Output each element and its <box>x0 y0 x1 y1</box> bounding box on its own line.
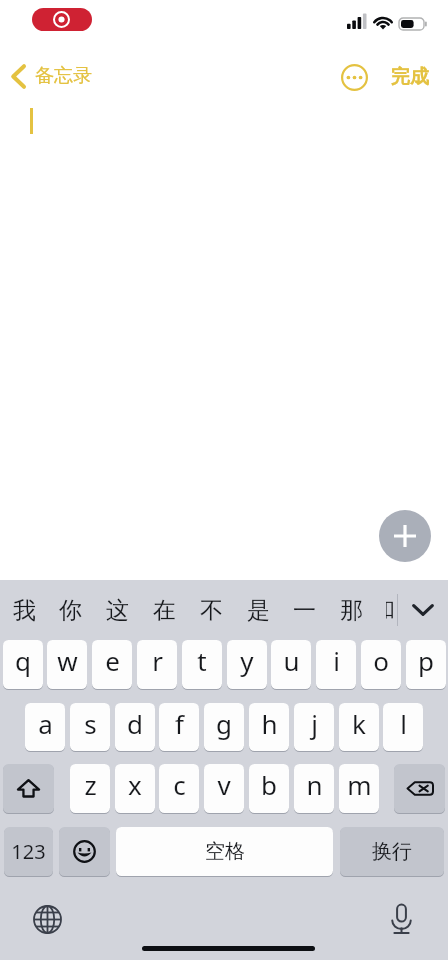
staticText: o <box>373 643 389 678</box>
button[interactable]: Backspace <box>394 764 445 813</box>
button[interactable]: Recording <box>32 8 92 31</box>
staticText: l <box>400 706 407 741</box>
staticText: t <box>197 643 207 678</box>
button[interactable]: e <box>92 640 132 689</box>
staticText: 你 <box>59 596 82 625</box>
button[interactable]: w <box>47 640 87 689</box>
staticText: g <box>216 706 232 741</box>
staticText: 那 <box>340 596 363 625</box>
button[interactable]: f <box>159 703 199 751</box>
button[interactable]: 我 <box>1 587 47 633</box>
button[interactable]: m <box>339 764 379 813</box>
button[interactable]: h <box>249 703 289 751</box>
staticText: s <box>84 706 97 741</box>
button[interactable]: Add attachment <box>379 510 431 562</box>
button[interactable]: o <box>361 640 401 689</box>
staticText: u <box>283 643 300 678</box>
button[interactable]: 完成 <box>386 60 434 94</box>
staticText: y <box>240 643 254 678</box>
button[interactable]: 在 <box>141 587 187 633</box>
button[interactable]: 你 <box>47 587 93 633</box>
staticText: 换行 <box>372 839 412 864</box>
button[interactable]: c <box>159 764 199 813</box>
button[interactable]: v <box>204 764 244 813</box>
staticText: e <box>105 643 120 678</box>
button[interactable]: 是 <box>235 587 281 633</box>
staticText: n <box>306 767 323 802</box>
staticText: m <box>347 767 372 802</box>
button[interactable]: x <box>115 764 155 813</box>
staticText: w <box>57 643 78 678</box>
button[interactable]: r <box>137 640 177 689</box>
button[interactable]: s <box>70 703 110 751</box>
staticText: p <box>418 643 434 678</box>
button[interactable]: Shift <box>3 764 54 813</box>
staticText: 备忘录 <box>35 64 92 88</box>
button[interactable]: 备忘录 <box>4 56 100 96</box>
staticText: 完成 <box>391 65 429 89</box>
button[interactable]: 这 <box>94 587 140 633</box>
button[interactable]: k <box>339 703 379 751</box>
button[interactable]: More options <box>341 64 368 91</box>
button[interactable]: p <box>406 640 446 689</box>
staticText: r <box>152 643 163 678</box>
button[interactable]: 空格 <box>116 827 333 876</box>
staticText: k <box>352 706 366 741</box>
button[interactable]: d <box>115 703 155 751</box>
button[interactable]: a <box>25 703 65 751</box>
staticText: 是 <box>247 596 270 625</box>
button[interactable]: 换行 <box>340 827 444 876</box>
button[interactable]: n <box>294 764 334 813</box>
button[interactable]: y <box>227 640 267 689</box>
staticText: 不 <box>200 596 223 625</box>
button[interactable]: 一 <box>281 587 327 633</box>
button[interactable]: 123 <box>4 827 53 876</box>
button[interactable]: q <box>3 640 43 689</box>
staticText: c <box>173 767 186 802</box>
button[interactable]: g <box>204 703 244 751</box>
button[interactable]: b <box>249 764 289 813</box>
staticText: v <box>217 767 231 802</box>
staticText: x <box>128 767 142 802</box>
staticText: h <box>261 706 278 741</box>
staticText: d <box>127 706 143 741</box>
staticText: 空格 <box>205 839 245 864</box>
button[interactable]: l <box>383 703 423 751</box>
staticText: b <box>261 767 277 802</box>
staticText: 这 <box>106 596 129 625</box>
button[interactable]: Emoji keyboard <box>59 827 110 876</box>
button[interactable]: 不 <box>188 587 234 633</box>
staticText: 一 <box>293 596 316 625</box>
button[interactable]: t <box>182 640 222 689</box>
button[interactable]: 和 <box>386 587 397 633</box>
button[interactable]: Switch keyboard language <box>27 899 67 939</box>
button[interactable]: z <box>70 764 110 813</box>
button[interactable]: Dictation <box>381 899 421 939</box>
button[interactable]: u <box>271 640 311 689</box>
staticText: j <box>311 706 318 741</box>
staticText: f <box>175 706 184 741</box>
staticText: z <box>84 767 97 802</box>
button[interactable]: Hide candidates <box>399 587 446 633</box>
staticText: i <box>333 643 340 678</box>
staticText: 123 <box>11 838 46 865</box>
button[interactable]: i <box>316 640 356 689</box>
staticText: 在 <box>153 596 176 625</box>
staticText: 我 <box>13 596 36 625</box>
button[interactable]: j <box>294 703 334 751</box>
button[interactable]: 那 <box>328 587 374 633</box>
staticText: q <box>15 643 31 678</box>
staticText: a <box>38 706 53 741</box>
